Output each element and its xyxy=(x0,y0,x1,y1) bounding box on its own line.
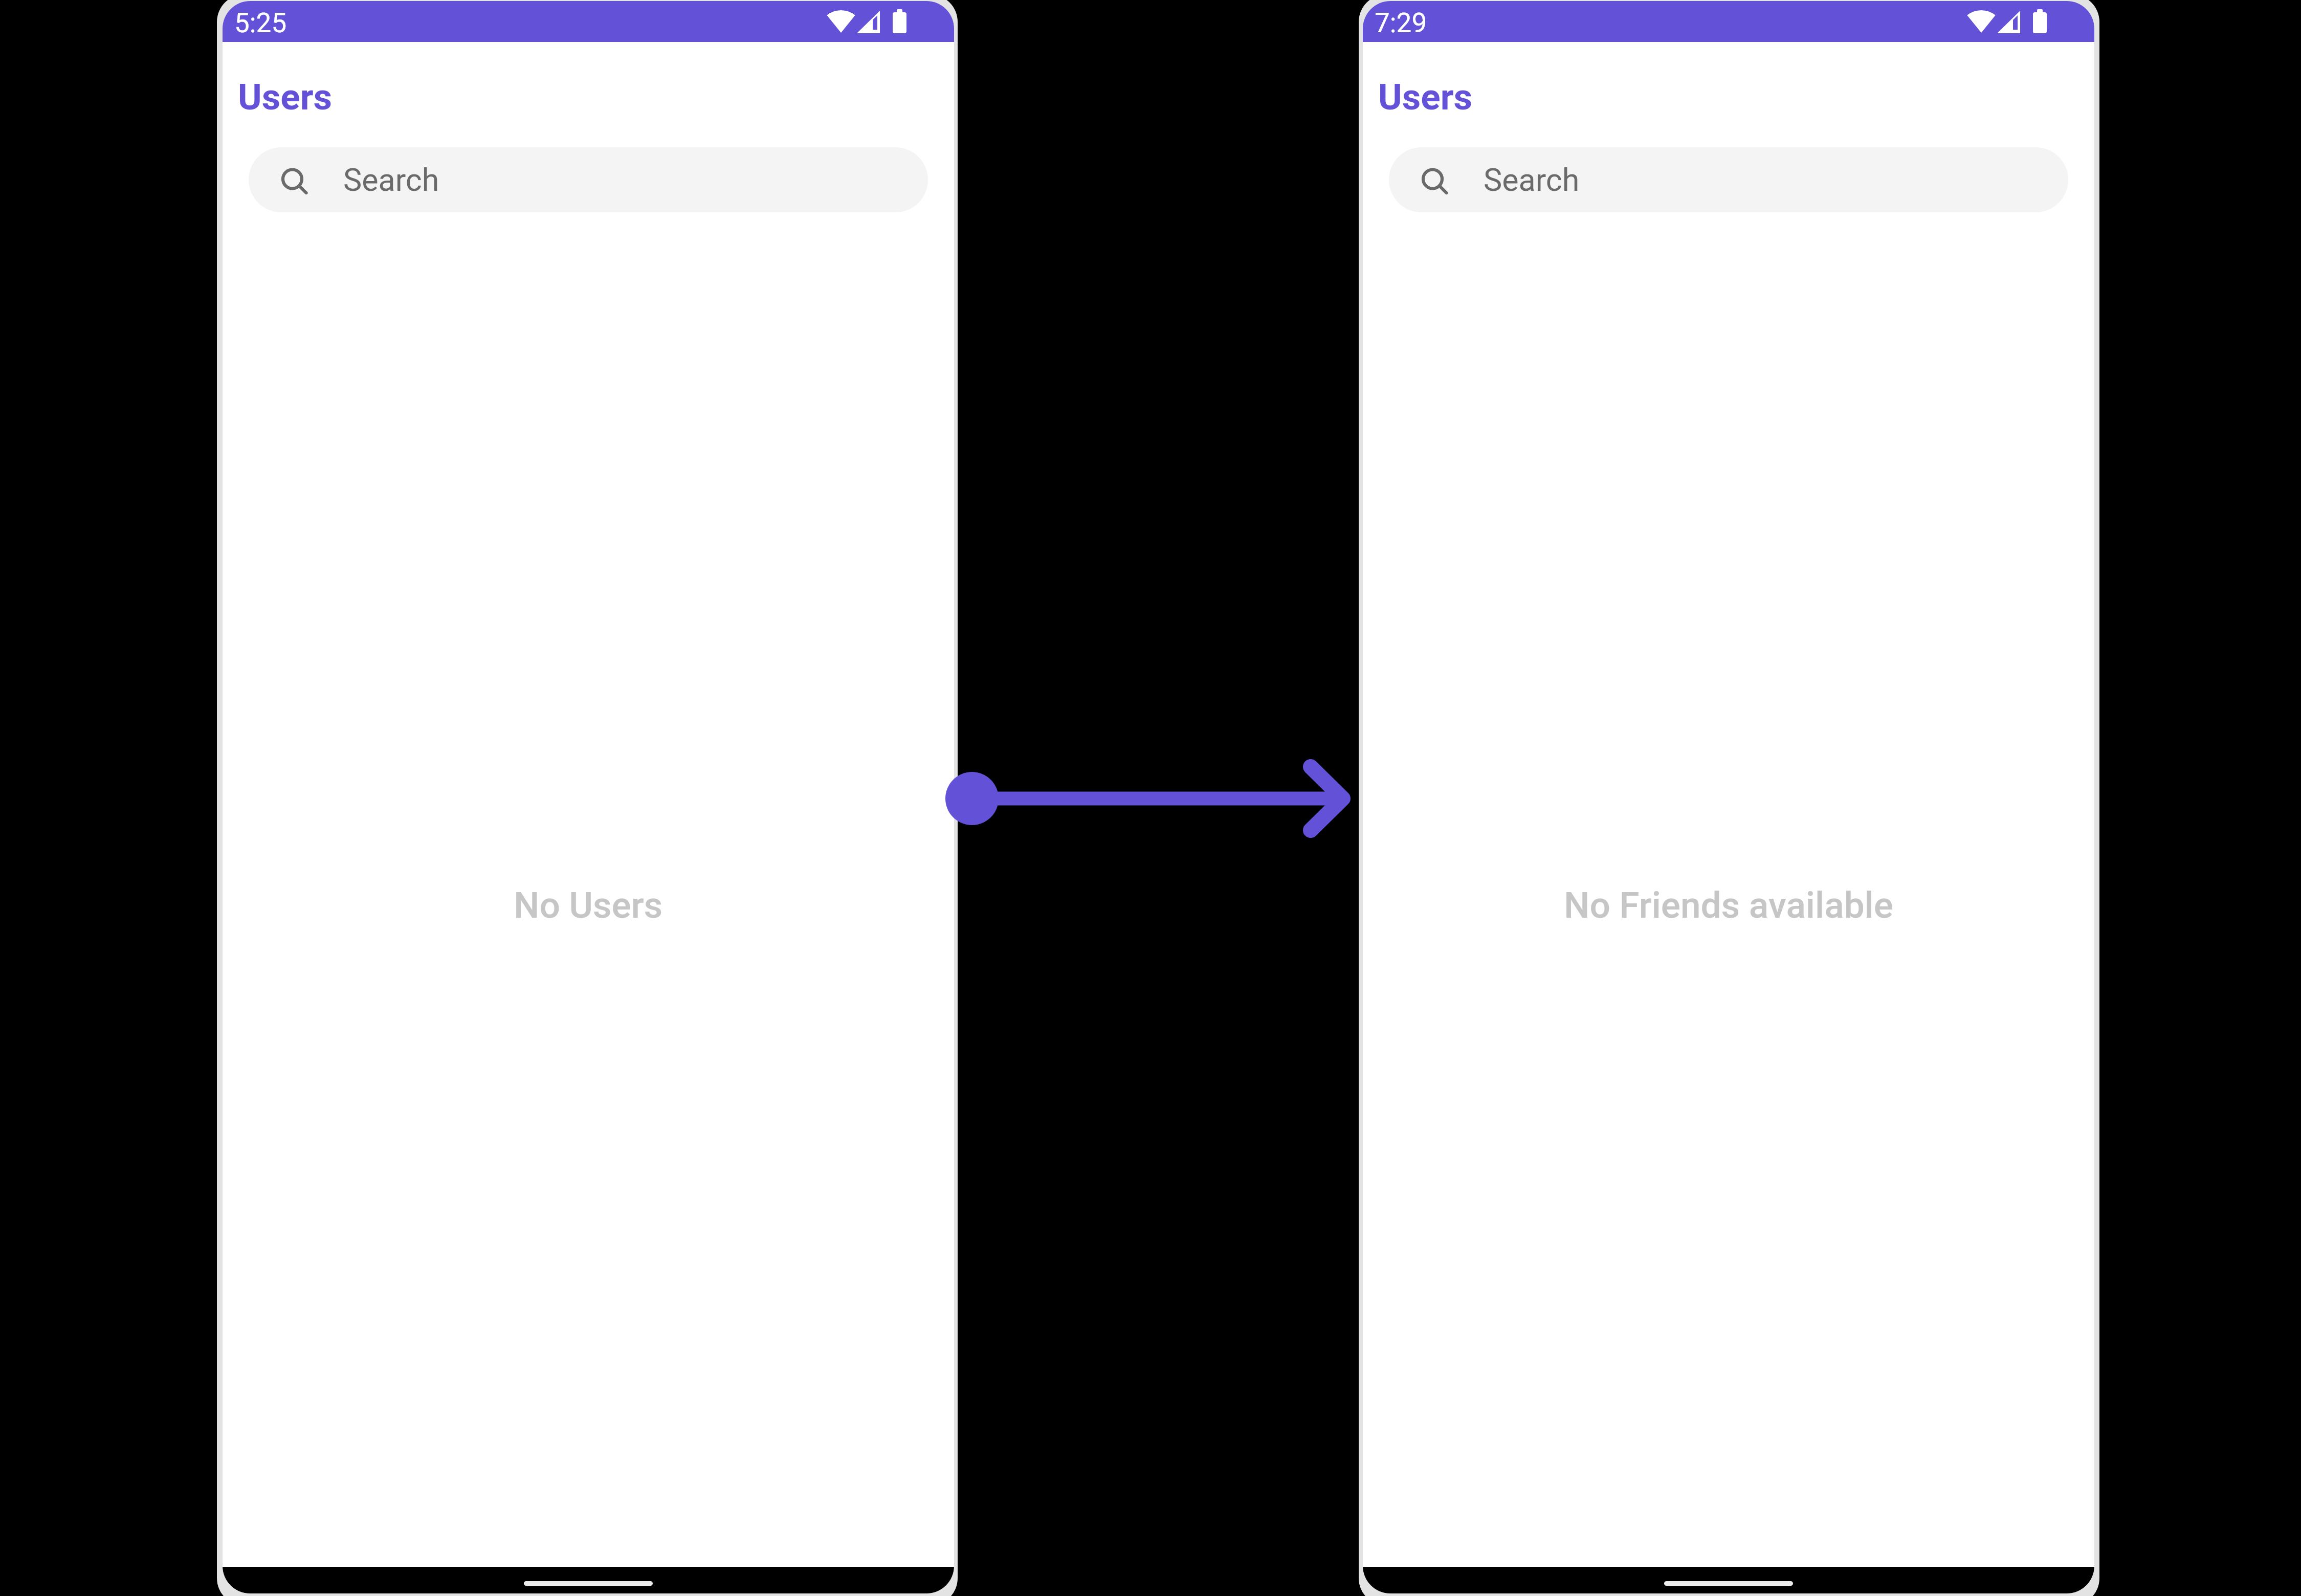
button[interactable]: Search xyxy=(249,147,928,212)
button[interactable]: Home xyxy=(1664,1581,1793,1586)
staticText: Users xyxy=(1378,76,1473,118)
staticText: Users xyxy=(238,76,333,118)
staticText: No Friends available xyxy=(1564,884,1893,926)
staticText: Search xyxy=(343,162,439,198)
staticText: No Users xyxy=(514,884,663,926)
staticText: Search xyxy=(1484,162,1580,198)
other: Search xyxy=(282,167,308,193)
button[interactable]: Search xyxy=(1389,147,2068,212)
staticText: 7:29 xyxy=(1375,7,1427,39)
other: Wi-Fi, mobile signal and battery xyxy=(1966,1,2094,42)
other: Wi-Fi, mobile signal and battery xyxy=(826,1,954,42)
button[interactable]: Home xyxy=(524,1581,653,1586)
staticText: 5:25 xyxy=(234,7,287,39)
other: Search xyxy=(1422,167,1449,193)
